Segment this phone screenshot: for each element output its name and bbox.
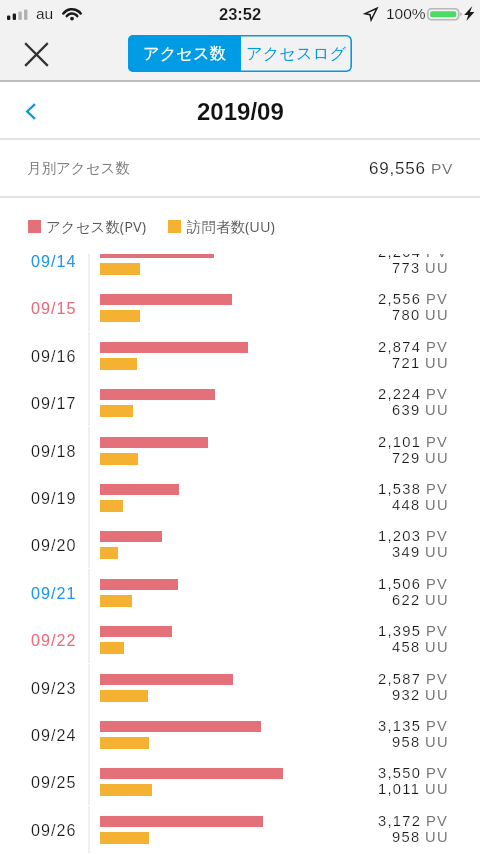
staticText: 09/16	[31, 347, 77, 365]
staticText: UU	[425, 450, 449, 466]
staticText: PV	[426, 576, 449, 592]
staticText: 100%	[386, 5, 426, 22]
staticText: 2019/09	[197, 98, 284, 125]
staticText: PV	[431, 160, 453, 177]
staticText: 2,204	[378, 254, 422, 260]
staticText: UU	[425, 402, 449, 418]
staticText: UU	[425, 829, 449, 845]
staticText: 2,556	[378, 291, 422, 307]
staticText: 958	[392, 734, 421, 750]
staticText: PV	[426, 339, 449, 355]
staticText: 2,101	[378, 434, 422, 450]
staticText: 月別アクセス数	[27, 159, 130, 177]
button[interactable]: 09/16	[0, 332, 480, 379]
staticText: UU	[425, 592, 449, 608]
staticText: 1,538	[378, 481, 422, 497]
button[interactable]: アクセス数	[128, 35, 241, 72]
staticText: PV	[426, 481, 449, 497]
staticText: 09/19	[31, 489, 77, 507]
staticText: 09/17	[31, 394, 77, 412]
staticText: 09/22	[31, 631, 77, 649]
button[interactable]: 09/15	[0, 284, 480, 331]
button[interactable]: Close	[21, 39, 51, 69]
staticText: 09/15	[31, 299, 77, 317]
button[interactable]: 09/26	[0, 806, 480, 853]
button[interactable]: 09/25	[0, 758, 480, 805]
staticText: 773	[392, 260, 421, 276]
staticText: 458	[392, 639, 421, 655]
staticText: 09/14	[31, 254, 77, 270]
staticText: PV	[426, 765, 449, 781]
staticText: 3,550	[378, 765, 422, 781]
staticText: PV	[426, 291, 449, 307]
staticText: アクセス数(PV)	[46, 216, 147, 236]
staticText: 448	[392, 497, 421, 513]
staticText: 1,506	[378, 576, 422, 592]
button[interactable]: 09/21	[0, 569, 480, 616]
staticText: 1,011	[378, 781, 421, 797]
staticText: 09/24	[31, 726, 77, 744]
staticText: PV	[426, 718, 449, 734]
button[interactable]: アクセスログ	[241, 35, 352, 72]
button[interactable]: 09/19	[0, 474, 480, 521]
staticText: PV	[426, 623, 449, 639]
staticText: 780	[392, 307, 421, 323]
staticText: 09/20	[31, 536, 77, 554]
staticText: 09/26	[31, 821, 77, 839]
staticText: 3,135	[378, 718, 422, 734]
staticText: PV	[426, 813, 449, 829]
staticText: 2,224	[378, 386, 422, 402]
staticText: UU	[425, 781, 449, 797]
staticText: UU	[425, 497, 449, 513]
staticText: UU	[425, 639, 449, 655]
staticText: PV	[426, 528, 449, 544]
button[interactable]: 09/22	[0, 616, 480, 663]
staticText: 23:52	[219, 5, 262, 23]
staticText: 349	[392, 544, 421, 560]
staticText: 932	[392, 687, 421, 703]
staticText: 09/21	[31, 584, 77, 602]
staticText: PV	[426, 254, 449, 260]
staticText: 729	[392, 450, 421, 466]
staticText: 3,172	[378, 813, 422, 829]
staticText: 1,203	[378, 528, 422, 544]
staticText: UU	[425, 355, 449, 371]
staticText: 2,874	[378, 339, 422, 355]
staticText: 639	[392, 402, 421, 418]
button[interactable]: Back	[14, 94, 48, 128]
button[interactable]: 09/14	[0, 254, 480, 284]
staticText: 622	[392, 592, 421, 608]
staticText: 訪問者数(UU)	[187, 216, 275, 236]
staticText: アクセスログ	[246, 43, 347, 64]
button[interactable]: 09/18	[0, 427, 480, 474]
button[interactable]: 09/20	[0, 521, 480, 568]
staticText: 721	[392, 355, 421, 371]
staticText: 958	[392, 829, 421, 845]
staticText: au	[36, 5, 54, 22]
staticText: 69,556	[369, 159, 426, 178]
staticText: 1,395	[378, 623, 422, 639]
staticText: UU	[425, 734, 449, 750]
staticText: PV	[426, 434, 449, 450]
staticText: PV	[426, 671, 449, 687]
staticText: 2,587	[378, 671, 422, 687]
staticText: アクセス数	[143, 43, 227, 64]
staticText: UU	[425, 260, 449, 276]
staticText: UU	[425, 307, 449, 323]
staticText: PV	[426, 386, 449, 402]
button[interactable]: 09/23	[0, 664, 480, 711]
button[interactable]: 09/24	[0, 711, 480, 758]
staticText: UU	[425, 687, 449, 703]
staticText: 09/23	[31, 679, 77, 697]
staticText: UU	[425, 544, 449, 560]
staticText: 09/25	[31, 773, 77, 791]
staticText: 09/18	[31, 442, 77, 460]
button[interactable]: 09/17	[0, 379, 480, 426]
